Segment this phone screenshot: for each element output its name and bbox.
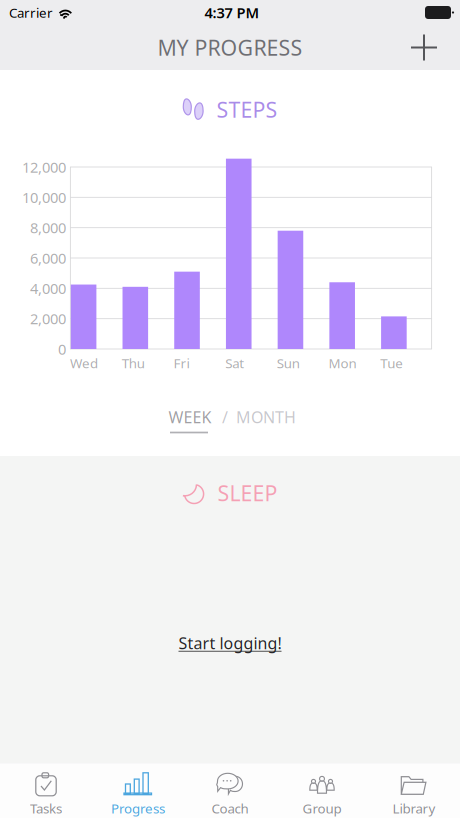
staticText: Thu (122, 354, 145, 372)
staticText: Tasks (30, 799, 62, 817)
button[interactable]: Coach (184, 763, 276, 818)
staticText: SLEEP (217, 479, 277, 507)
staticText: 2,000 (30, 309, 66, 328)
staticText: MONTH (236, 406, 296, 428)
button[interactable]: Add (401, 25, 447, 70)
staticText: Wed (70, 354, 98, 372)
staticText: 4,000 (30, 279, 66, 298)
staticText: WEEK (168, 406, 211, 428)
staticText: Tue (380, 354, 403, 372)
staticText: Fri (173, 354, 189, 372)
staticText: 4:37 PM (204, 3, 259, 22)
button[interactable]: MONTH (235, 405, 297, 441)
staticText: Group (302, 799, 341, 817)
staticText: / (222, 406, 228, 428)
button[interactable]: WEEK (165, 405, 215, 441)
staticText: 10,000 (22, 188, 66, 207)
button[interactable]: Tasks (0, 763, 92, 818)
button[interactable]: Start logging! (170, 630, 290, 656)
button[interactable]: Library (368, 763, 460, 818)
button[interactable]: Group (276, 763, 368, 818)
staticText: Carrier (9, 4, 53, 21)
staticText: Library (392, 799, 435, 817)
staticText: 0 (58, 339, 66, 359)
button[interactable]: Progress (92, 763, 184, 818)
staticText: 8,000 (30, 218, 66, 237)
staticText: 6,000 (30, 248, 66, 268)
staticText: Progress (111, 799, 165, 817)
staticText: 12,000 (22, 157, 66, 177)
staticText: STEPS (216, 95, 277, 124)
staticText: MY PROGRESS (157, 33, 302, 62)
staticText: Sun (277, 354, 300, 372)
staticText: Start logging! (178, 632, 281, 654)
staticText: Mon (329, 354, 357, 372)
staticText: Coach (211, 799, 248, 817)
staticText: Sat (225, 354, 244, 372)
